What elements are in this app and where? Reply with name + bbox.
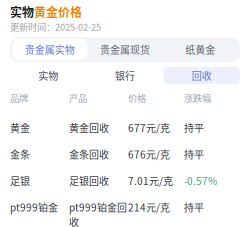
staticText: 金条回收 — [69, 147, 109, 161]
button[interactable]: 纸黄金 — [163, 39, 238, 60]
staticText: 持平 — [184, 147, 204, 161]
staticText: 黄金价格 — [34, 3, 82, 20]
staticText: 持平 — [184, 120, 204, 135]
button[interactable]: 贵金属实物 — [12, 39, 87, 60]
staticText: 银行 — [115, 68, 135, 83]
staticText: 纸黄金 — [185, 42, 215, 57]
staticText: 足银回收 — [69, 173, 109, 188]
button[interactable]: 贵金属现货 — [87, 39, 163, 60]
button[interactable]: 实物 — [10, 67, 87, 84]
staticText: pt999铂金回收 — [69, 200, 127, 227]
staticText: 贵金属实物 — [25, 42, 75, 57]
staticText: 黄金回收 — [69, 120, 109, 135]
staticText: 更新时间：2025-02-25 — [10, 20, 101, 33]
staticText: 回收 — [192, 68, 212, 83]
staticText: 持平 — [184, 200, 204, 214]
staticText: 价格 — [128, 91, 146, 104]
staticText: 214元/克 — [128, 200, 170, 214]
staticText: -0.57% — [184, 173, 217, 188]
staticText: 黄金 — [10, 120, 30, 135]
staticText: 金条 — [10, 147, 30, 161]
staticText: pt999铂金 — [10, 200, 58, 214]
staticText: 涨跌幅 — [184, 91, 211, 104]
staticText: 实物 — [10, 3, 34, 20]
staticText: 7.01元/克 — [128, 173, 173, 188]
staticText: 677元/克 — [128, 120, 170, 135]
staticText: 贵金属现货 — [100, 42, 150, 57]
staticText: 产品 — [69, 91, 87, 104]
staticText: 实物 — [38, 68, 58, 83]
button[interactable]: 回收 — [163, 67, 240, 84]
staticText: 676元/克 — [128, 147, 170, 161]
button[interactable]: 银行 — [87, 67, 163, 84]
staticText: 品牌 — [10, 91, 28, 104]
staticText: 足银 — [10, 173, 30, 188]
